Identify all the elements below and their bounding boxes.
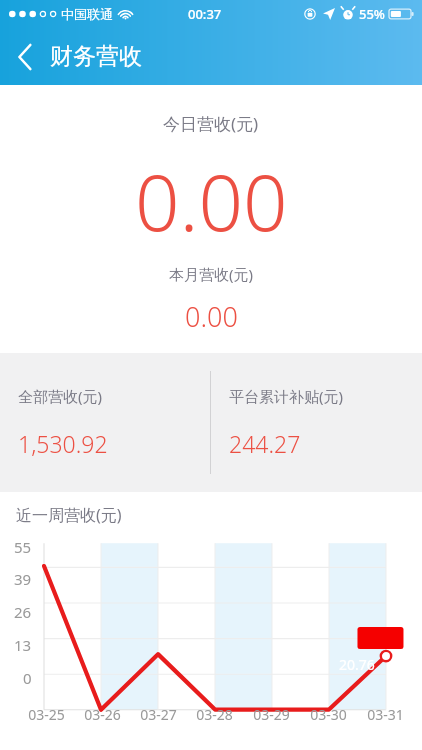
staticText: 中国联通 <box>61 6 113 22</box>
staticText: 20.76 <box>339 655 375 674</box>
staticText: 26 <box>14 602 32 622</box>
staticText: 03-27 <box>140 705 177 724</box>
staticText: 03-28 <box>196 705 233 724</box>
staticText: 00:37 <box>188 5 222 23</box>
staticText: 本月营收(元) <box>169 264 254 284</box>
staticText: 1,530.92 <box>18 428 108 459</box>
button[interactable]: 平台累计补贴(元) <box>211 353 422 492</box>
staticText: 39 <box>14 569 32 589</box>
staticText: 03-30 <box>310 705 347 724</box>
button[interactable]: Back <box>0 28 50 85</box>
staticText: 近一周营收(元) <box>16 504 122 526</box>
staticText: 今日营收(元) <box>163 112 259 135</box>
staticText: 55% <box>359 5 385 23</box>
staticText: 0.00 <box>185 298 238 335</box>
staticText: 55 <box>14 537 32 557</box>
staticText: 13 <box>14 635 32 655</box>
button[interactable]: 全部营收(元) <box>0 353 210 492</box>
staticText: 全部营收(元) <box>18 386 103 406</box>
staticText: 03-25 <box>28 705 65 724</box>
staticText: 244.27 <box>229 428 301 459</box>
staticText: 03-29 <box>253 705 290 724</box>
staticText: 0 <box>23 668 32 688</box>
staticText: 0.00 <box>135 148 288 254</box>
staticText: 03-31 <box>367 705 404 724</box>
staticText: 平台累计补贴(元) <box>229 386 344 406</box>
staticText: 财务营收 <box>50 42 142 71</box>
staticText: 03-26 <box>84 705 121 724</box>
